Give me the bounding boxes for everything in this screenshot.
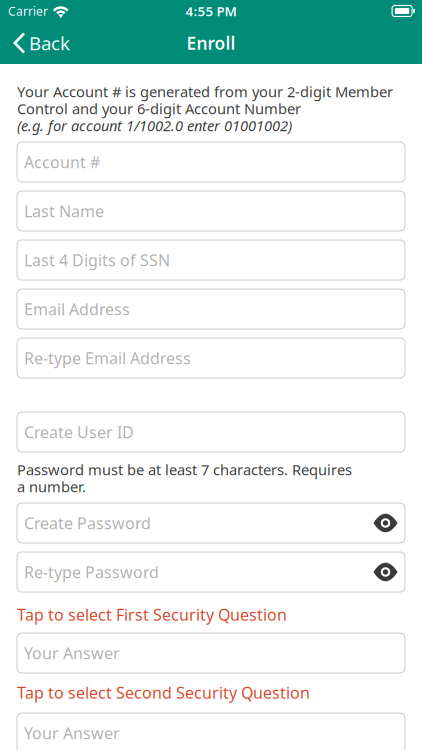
staticText: Re-type Password [24, 561, 159, 583]
button[interactable]: Last 4 Digits of SSN [17, 240, 405, 280]
staticText: Password must be at least 7 characters. … [17, 460, 352, 479]
staticText: Back [29, 31, 70, 55]
staticText: Your Account # is generated from your 2-… [17, 82, 393, 101]
button[interactable]: Create User ID [17, 412, 405, 452]
staticText: Last 4 Digits of SSN [24, 249, 170, 271]
button[interactable]: Re-type Email Address [17, 338, 405, 378]
staticText: Account # [24, 151, 100, 173]
staticText: Tap to select First Security Question [17, 604, 287, 625]
staticText: Email Address [24, 298, 130, 320]
button[interactable]: Tap to select First Security Question [17, 606, 405, 623]
button[interactable]: Re-type Password [17, 552, 405, 592]
button[interactable]: Account # [17, 142, 405, 182]
staticText: Carrier [8, 3, 48, 19]
button[interactable]: Tap to select Second Security Question [17, 684, 405, 701]
staticText: Last Name [24, 200, 104, 222]
button[interactable]: Your Answer [17, 713, 405, 750]
button[interactable]: Show password [373, 509, 398, 537]
staticText: Re-type Email Address [24, 347, 191, 369]
staticText: Your Answer [24, 722, 120, 744]
staticText: Control and your 6-digit Account Number [17, 99, 301, 118]
staticText: (e.g. for account 1/1002.0 enter 0100100… [17, 116, 292, 135]
staticText: Enroll [186, 31, 235, 54]
staticText: Your Answer [24, 642, 120, 664]
staticText: Create User ID [24, 421, 134, 443]
staticText: Create Password [24, 512, 151, 534]
button[interactable]: Create Password [17, 503, 405, 543]
button[interactable]: Show password [373, 558, 398, 586]
staticText: 4:55 PM [185, 2, 236, 20]
button[interactable]: Back [0, 22, 80, 64]
button[interactable]: Last Name [17, 191, 405, 231]
staticText: a number. [17, 477, 86, 496]
button[interactable]: Email Address [17, 289, 405, 329]
staticText: Tap to select Second Security Question [17, 682, 310, 703]
button[interactable]: Your Answer [17, 633, 405, 673]
